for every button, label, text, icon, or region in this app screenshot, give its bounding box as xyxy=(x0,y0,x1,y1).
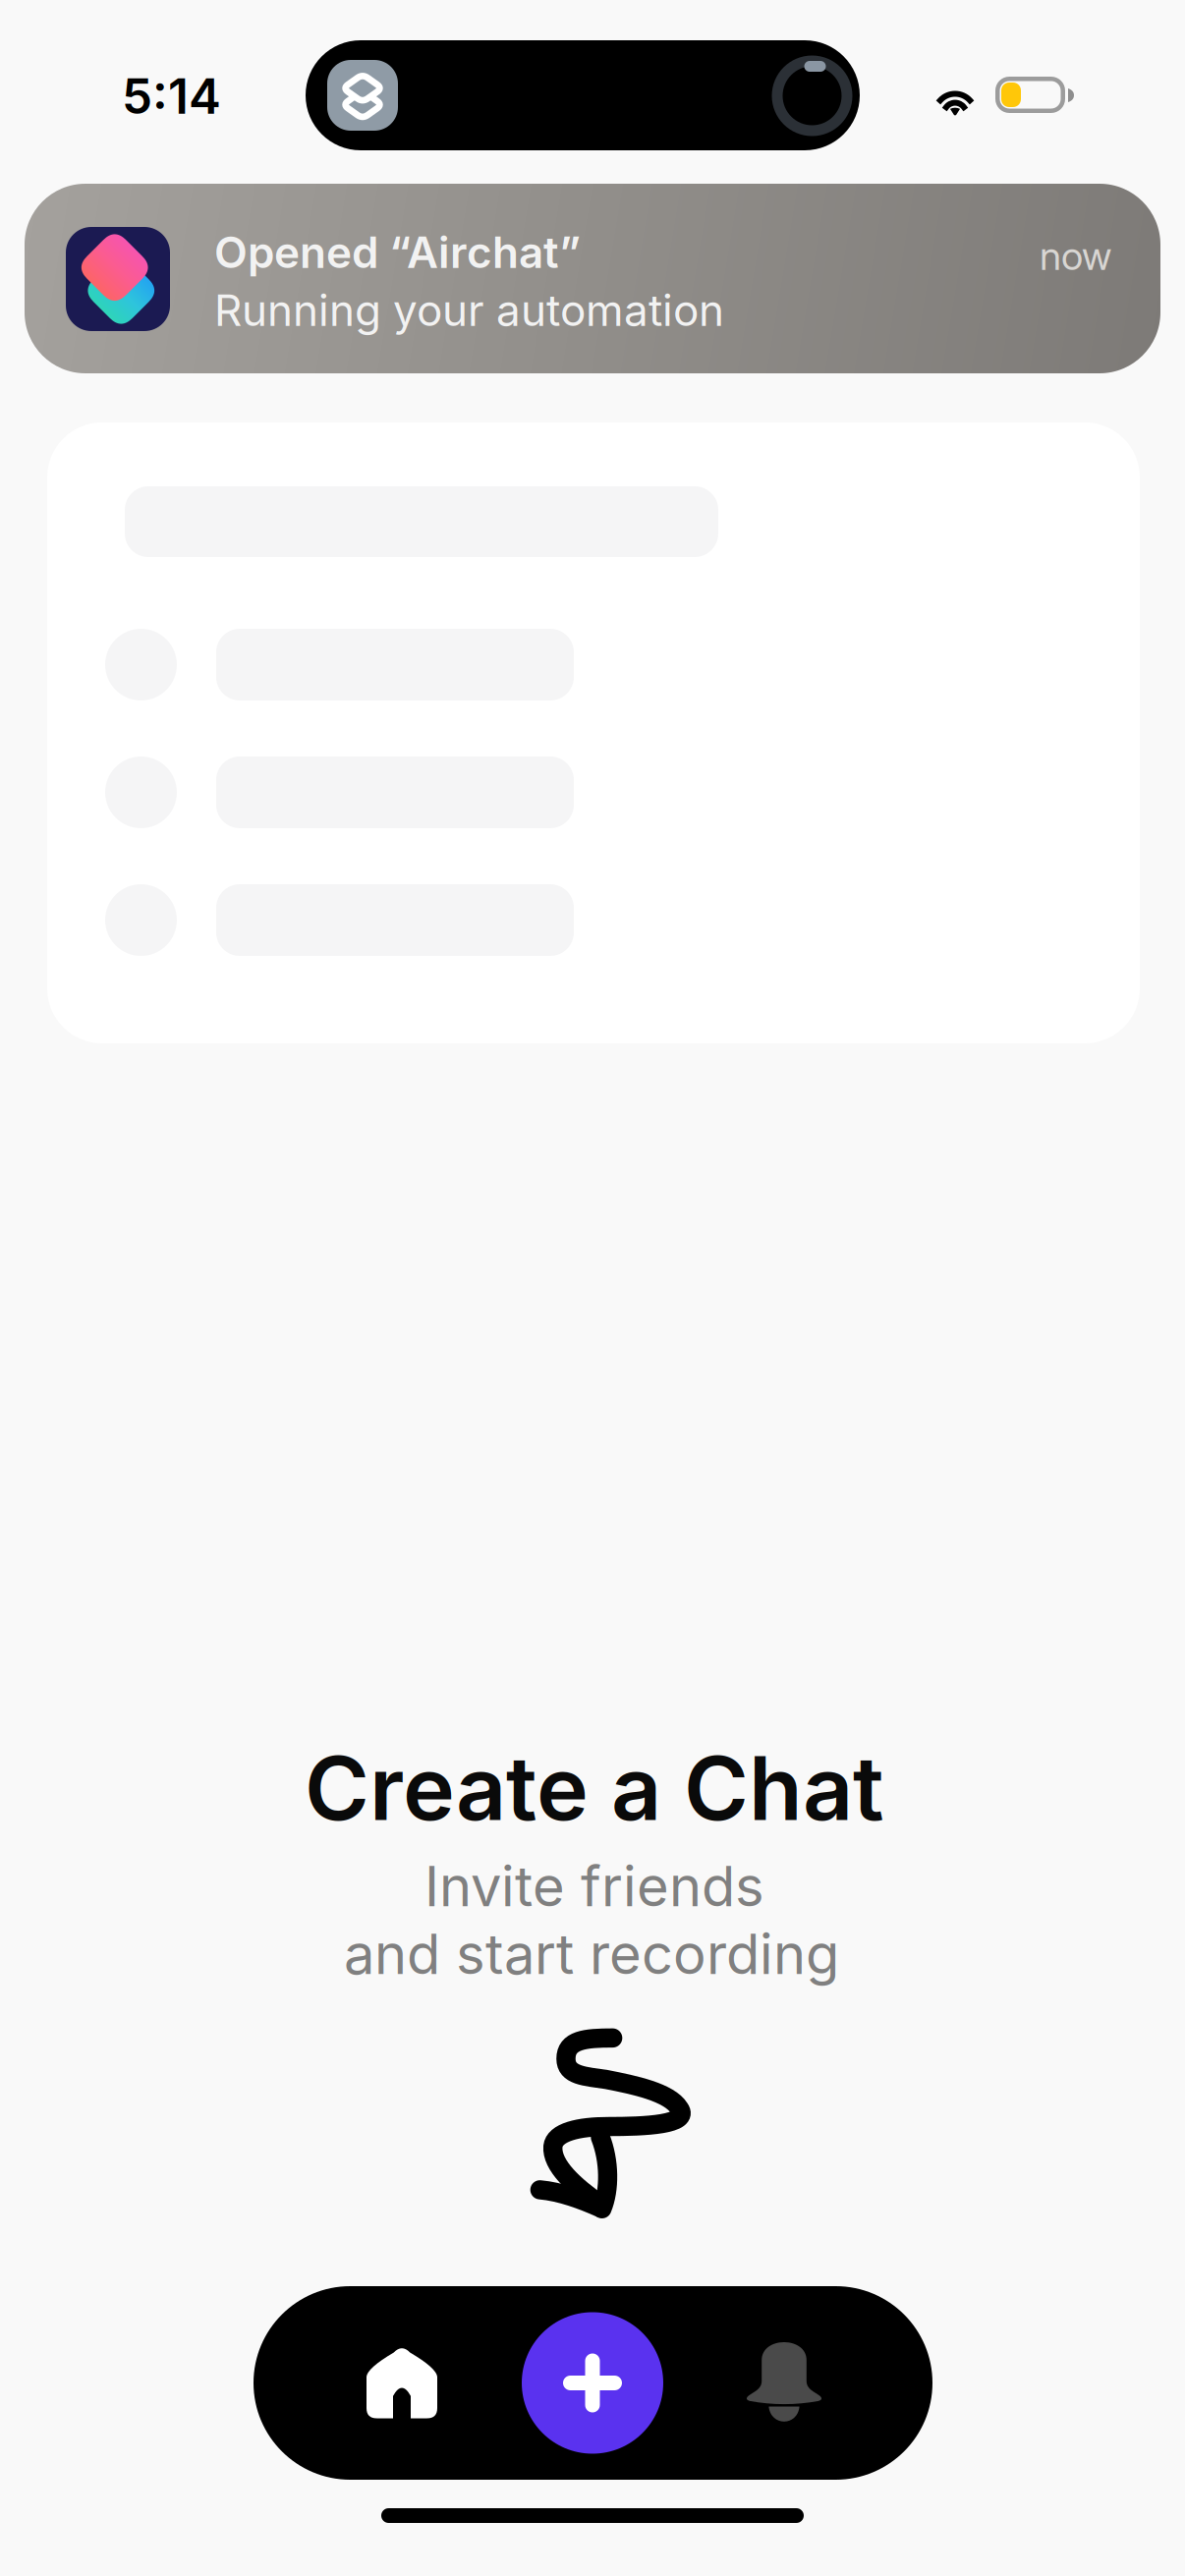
staticText: Invite friends xyxy=(424,1853,764,1920)
staticText: now xyxy=(1040,232,1111,279)
staticText: Opened “Airchat” xyxy=(214,226,581,278)
staticText: Create a Chat xyxy=(305,1735,884,1841)
button[interactable]: Notifications xyxy=(701,2286,868,2480)
staticText: Running your automation xyxy=(214,284,724,336)
button[interactable]: Opened “Airchat” xyxy=(25,184,1160,373)
button[interactable]: New chat xyxy=(509,2286,676,2480)
staticText: and start recording xyxy=(344,1921,839,1987)
staticText: 5:14 xyxy=(122,67,221,125)
button[interactable]: Home xyxy=(318,2286,485,2480)
